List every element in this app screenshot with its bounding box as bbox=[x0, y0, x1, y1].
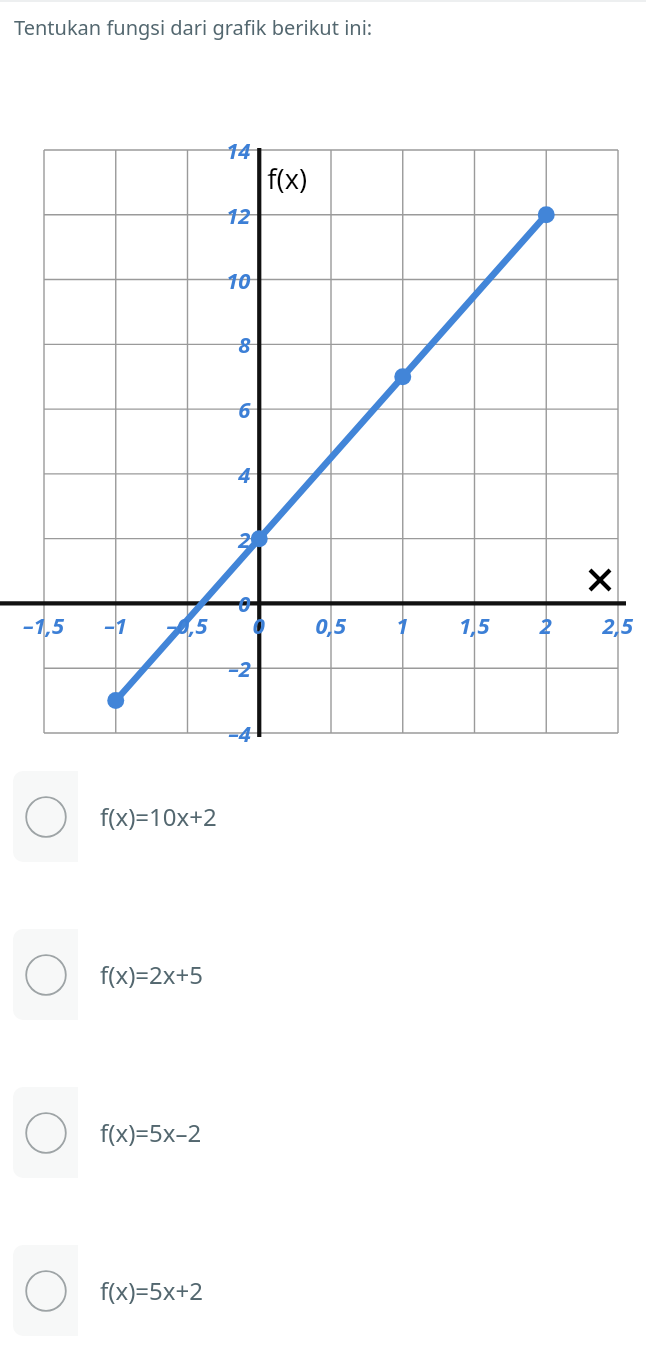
button[interactable]: f(x)=5x–2 bbox=[13, 1087, 646, 1178]
staticText: Tentukan fungsi dari grafik berikut ini: bbox=[14, 14, 373, 41]
staticText: f(x)=2x+5 bbox=[100, 958, 203, 991]
staticText: f(x)=5x–2 bbox=[100, 1116, 202, 1149]
button[interactable]: f(x)=5x+2 bbox=[13, 1245, 646, 1336]
button[interactable]: f(x)=10x+2 bbox=[13, 771, 646, 862]
staticText: f(x)=5x+2 bbox=[100, 1274, 203, 1307]
staticText: f(x)=10x+2 bbox=[100, 800, 217, 833]
button[interactable]: f(x)=2x+5 bbox=[13, 929, 646, 1020]
